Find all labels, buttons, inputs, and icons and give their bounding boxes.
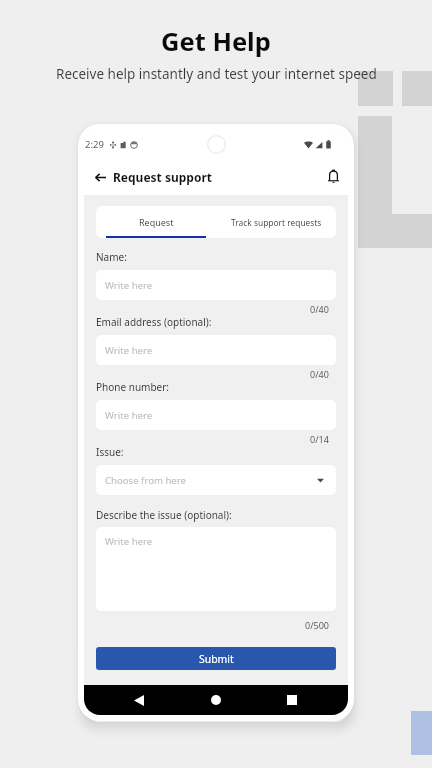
staticText: Submit [199, 652, 234, 666]
staticText: Describe the issue (optional): [96, 508, 232, 522]
button[interactable]: Recent apps [279, 687, 305, 713]
staticText: 0/40 [310, 303, 329, 315]
button[interactable]: Write here [96, 400, 336, 430]
staticText: Email address (optional): [96, 315, 212, 329]
button[interactable]: Request [96, 206, 216, 238]
staticText: Write here [105, 344, 153, 357]
staticText: Write here [105, 409, 153, 422]
staticText: 0/14 [310, 433, 329, 445]
staticText: Write here [105, 279, 153, 292]
staticText: Request support [113, 169, 213, 185]
staticText: Write here [105, 535, 153, 548]
staticText: Choose from here [105, 474, 186, 487]
button[interactable]: Back [89, 166, 111, 188]
button[interactable]: Write here [96, 335, 336, 365]
button[interactable]: Track support requests [216, 206, 336, 238]
staticText: Get Help [161, 24, 271, 59]
staticText: Request [139, 216, 174, 228]
staticText: Issue: [96, 445, 124, 459]
staticText: Receive help instantly and test your int… [56, 65, 377, 83]
staticText: Track support requests [231, 217, 322, 228]
staticText: 2:29 [85, 138, 104, 151]
staticText: 0/40 [310, 368, 329, 380]
button[interactable]: Submit [96, 647, 336, 670]
staticText: Phone number: [96, 380, 170, 394]
button[interactable]: Back [126, 687, 152, 713]
button[interactable]: Home [203, 687, 229, 713]
button[interactable]: Notifications [322, 166, 344, 188]
staticText: 0/500 [305, 619, 329, 631]
button[interactable]: Write here [96, 270, 336, 300]
button[interactable]: Choose from here [96, 465, 336, 495]
staticText: Name: [96, 250, 127, 264]
button[interactable]: Write here [96, 527, 336, 611]
